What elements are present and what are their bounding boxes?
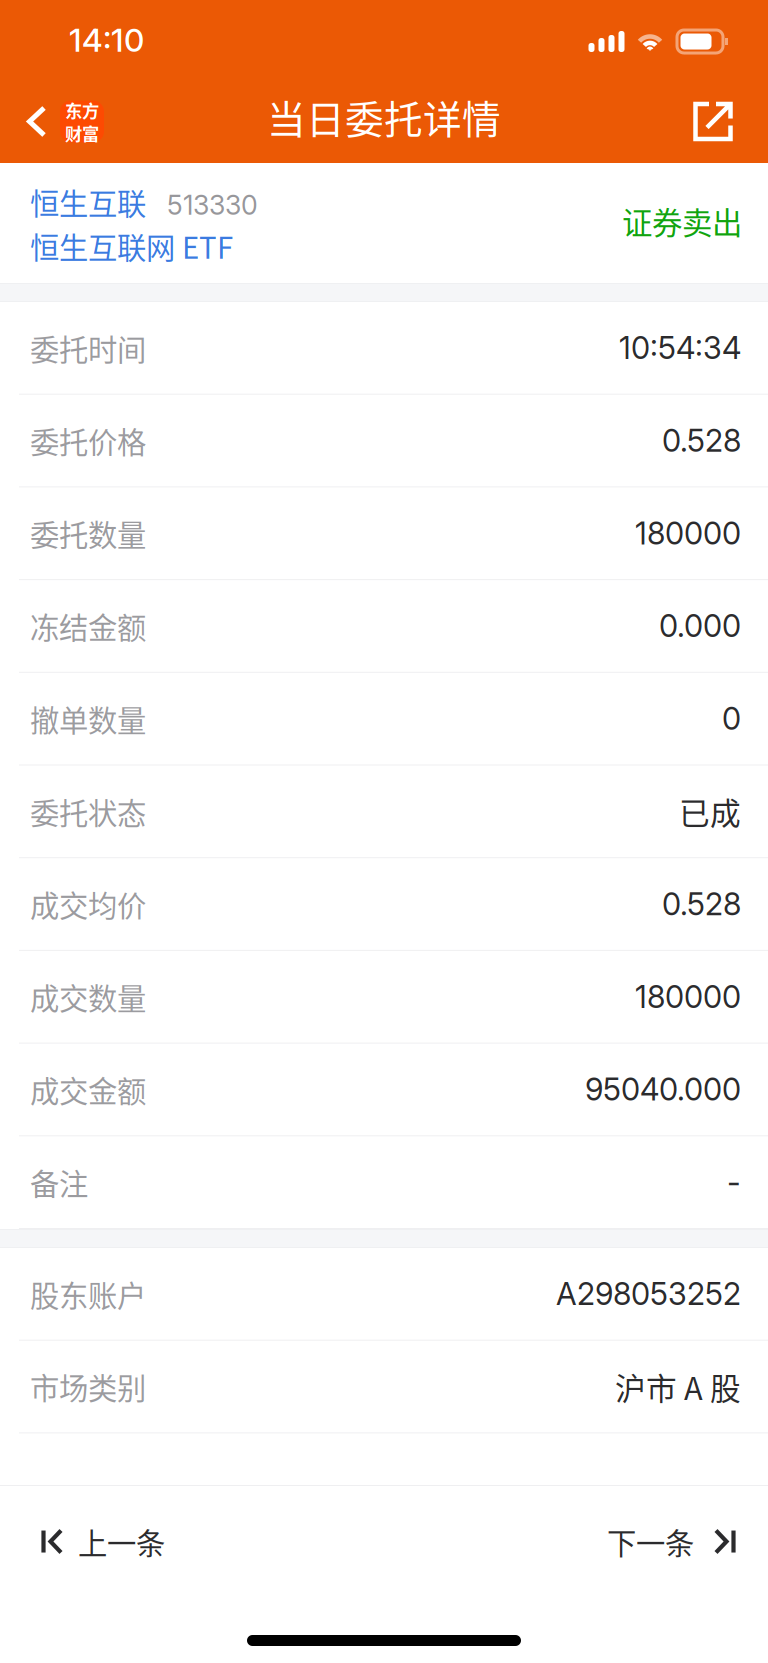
staticText: 0 (722, 700, 741, 737)
staticText: 恒生互联网 ETF (30, 225, 233, 267)
staticText: 0.528 (662, 885, 741, 923)
staticText: 10:54:34 (619, 329, 741, 366)
staticText: 冻结金额 (30, 605, 146, 647)
staticText: 当日委托详情 (267, 89, 501, 145)
staticText: 180000 (635, 978, 741, 1015)
staticText: A298053252 (556, 1275, 741, 1312)
staticText: 成交数量 (30, 975, 146, 1018)
staticText: 成交均价 (30, 883, 146, 925)
staticText: - (727, 1164, 741, 1201)
staticText: 沪市 A 股 (615, 1364, 741, 1409)
staticText: 14:10 (69, 21, 144, 59)
button[interactable]: 上一条 (0, 1486, 195, 1597)
staticText: 180000 (635, 515, 741, 552)
button[interactable]: Back (0, 80, 122, 163)
staticText: 市场类别 (30, 1365, 146, 1408)
staticText: 股东账户 (30, 1273, 146, 1315)
staticText: 上一条 (78, 1520, 165, 1563)
staticText: 恒生互联 (30, 181, 146, 223)
staticText: 已成 (679, 789, 741, 833)
staticText: 0.000 (659, 607, 741, 644)
staticText: 委托时间 (30, 327, 146, 369)
staticText: 下一条 (607, 1520, 694, 1563)
button[interactable]: Share (663, 80, 768, 163)
staticText: 0.528 (662, 422, 741, 459)
staticText: 成交金额 (30, 1068, 146, 1111)
button[interactable]: 下一条 (577, 1486, 768, 1597)
staticText: 委托状态 (30, 790, 146, 833)
staticText: 委托价格 (30, 419, 146, 462)
staticText: 513330 (167, 189, 258, 221)
staticText: 委托数量 (30, 512, 146, 554)
staticText: 财富 (65, 120, 99, 146)
staticText: 东方 (65, 97, 99, 122)
staticText: 备注 (30, 1161, 88, 1203)
staticText: 95040.000 (585, 1071, 741, 1108)
staticText: 证券卖出 (622, 199, 742, 243)
staticText: 撤单数量 (30, 697, 146, 740)
